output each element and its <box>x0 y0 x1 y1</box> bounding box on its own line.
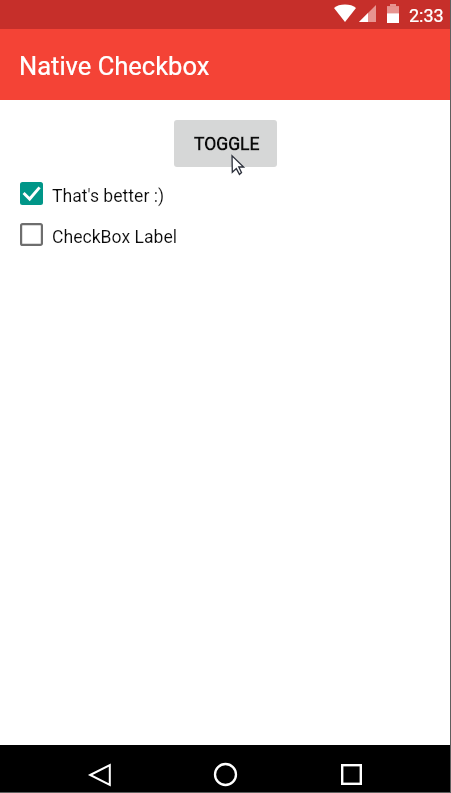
button[interactable]: Recents <box>331 754 372 793</box>
button[interactable]: Back <box>79 754 120 793</box>
button[interactable]: That's better :) <box>0 172 451 215</box>
staticText: That's better :) <box>52 186 165 207</box>
staticText: TOGGLE <box>194 134 260 155</box>
button[interactable]: TOGGLE <box>174 120 277 167</box>
staticText: 2:33 <box>409 5 444 26</box>
staticText: CheckBox Label <box>52 227 178 248</box>
staticText: Native Checkbox <box>19 51 210 81</box>
button[interactable]: Home <box>205 754 246 793</box>
button[interactable]: CheckBox Label <box>0 213 451 256</box>
